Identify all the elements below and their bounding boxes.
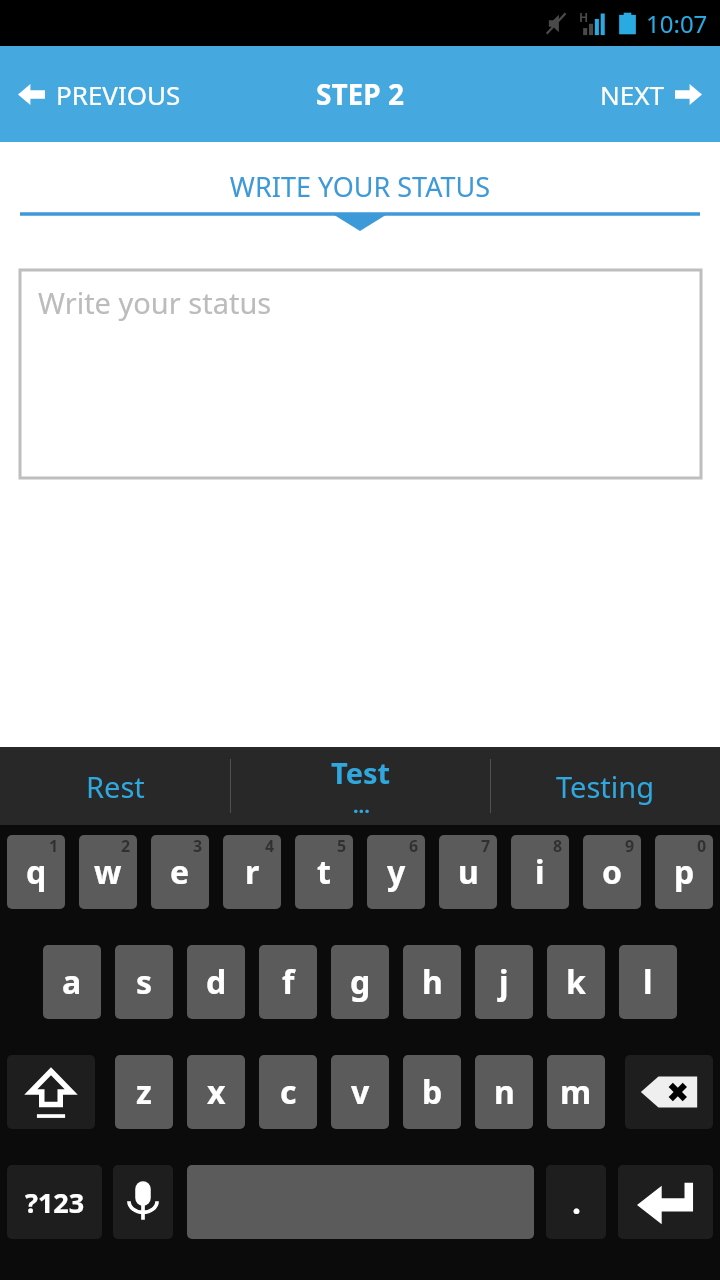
staticText: v bbox=[351, 1070, 370, 1114]
staticText: i bbox=[535, 850, 545, 894]
staticText: z bbox=[136, 1070, 152, 1114]
staticText: 6 bbox=[409, 835, 419, 857]
staticText: 7 bbox=[481, 835, 491, 857]
button[interactable]: x bbox=[187, 1055, 245, 1129]
staticText: t bbox=[317, 850, 331, 894]
staticText: WRITE YOUR STATUS bbox=[0, 168, 720, 205]
staticText: H bbox=[579, 9, 589, 25]
staticText: 5 bbox=[337, 835, 347, 857]
button[interactable]: y bbox=[367, 835, 425, 909]
staticText: Testing bbox=[556, 767, 655, 806]
staticText: STEP 2 bbox=[316, 75, 404, 113]
staticText: n bbox=[494, 1070, 515, 1114]
button[interactable]: e bbox=[151, 835, 209, 909]
button[interactable]: Enter bbox=[618, 1165, 713, 1239]
staticText: NEXT bbox=[600, 77, 664, 112]
staticText: u bbox=[458, 850, 479, 894]
staticText: m bbox=[560, 1070, 592, 1114]
button[interactable]: v bbox=[331, 1055, 389, 1129]
staticText: 1 bbox=[49, 835, 59, 857]
staticText: x bbox=[207, 1070, 226, 1114]
button[interactable]: z bbox=[115, 1055, 173, 1129]
staticText: k bbox=[566, 960, 586, 1004]
button[interactable]: l bbox=[619, 945, 677, 1019]
staticText: r bbox=[245, 850, 260, 894]
staticText: l bbox=[643, 960, 653, 1004]
button[interactable]: n bbox=[475, 1055, 533, 1129]
button[interactable]: Voice input bbox=[113, 1165, 173, 1239]
staticText: 10:07 bbox=[646, 7, 708, 40]
staticText: Rest bbox=[86, 767, 145, 806]
staticText: b bbox=[422, 1070, 443, 1114]
button[interactable]: f bbox=[259, 945, 317, 1019]
button[interactable]: PREVIOUS bbox=[0, 61, 199, 128]
staticText: g bbox=[350, 960, 371, 1004]
button[interactable]: i bbox=[511, 835, 569, 909]
button[interactable]: r bbox=[223, 835, 281, 909]
staticText: 2 bbox=[121, 835, 131, 857]
button[interactable]: Testing bbox=[491, 747, 720, 825]
button[interactable]: Shift bbox=[7, 1055, 95, 1129]
button[interactable]: q bbox=[7, 835, 65, 909]
staticText: 3 bbox=[193, 835, 203, 857]
button[interactable]: Test bbox=[231, 747, 490, 825]
staticText: j bbox=[499, 960, 509, 1004]
button[interactable]: b bbox=[403, 1055, 461, 1129]
button[interactable]: Backspace bbox=[625, 1055, 713, 1129]
button[interactable]: k bbox=[547, 945, 605, 1019]
button[interactable]: t bbox=[295, 835, 353, 909]
button[interactable]: Write your status bbox=[20, 270, 701, 478]
button[interactable]: g bbox=[331, 945, 389, 1019]
staticText: w bbox=[94, 850, 122, 894]
staticText: ... bbox=[353, 792, 370, 819]
button[interactable]: a bbox=[43, 945, 101, 1019]
staticText: 8 bbox=[553, 835, 563, 857]
staticText: a bbox=[62, 960, 82, 1004]
button[interactable]: m bbox=[547, 1055, 605, 1129]
staticText: s bbox=[136, 960, 153, 1004]
staticText: p bbox=[674, 850, 695, 894]
button[interactable]: u bbox=[439, 835, 497, 909]
button[interactable]: s bbox=[115, 945, 173, 1019]
staticText: Write your status bbox=[38, 283, 272, 322]
staticText: y bbox=[387, 850, 406, 894]
staticText: e bbox=[170, 850, 190, 894]
staticText: . bbox=[572, 1180, 581, 1224]
button[interactable]: . bbox=[546, 1165, 606, 1239]
button[interactable]: p bbox=[655, 835, 713, 909]
staticText: 9 bbox=[625, 835, 635, 857]
staticText: 0 bbox=[697, 835, 707, 857]
staticText: PREVIOUS bbox=[56, 77, 181, 112]
button[interactable]: w bbox=[79, 835, 137, 909]
staticText: h bbox=[422, 960, 443, 1004]
button[interactable]: d bbox=[187, 945, 245, 1019]
button[interactable]: ?123 bbox=[7, 1165, 102, 1239]
staticText: c bbox=[280, 1070, 297, 1114]
staticText: d bbox=[206, 960, 227, 1004]
staticText: o bbox=[602, 850, 623, 894]
staticText: ?123 bbox=[25, 1184, 85, 1221]
button[interactable]: Rest bbox=[0, 747, 230, 825]
staticText: q bbox=[26, 850, 47, 894]
button[interactable]: NEXT bbox=[582, 61, 720, 128]
staticText: f bbox=[282, 960, 295, 1004]
button[interactable]: c bbox=[259, 1055, 317, 1129]
staticText: Test bbox=[331, 753, 391, 792]
button[interactable]: h bbox=[403, 945, 461, 1019]
staticText: 4 bbox=[265, 835, 275, 857]
button[interactable]: o bbox=[583, 835, 641, 909]
button[interactable]: j bbox=[475, 945, 533, 1019]
